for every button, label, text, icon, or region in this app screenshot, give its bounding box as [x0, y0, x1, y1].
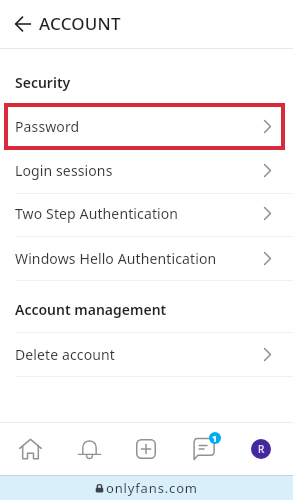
- staticText: Two Step Authentication: [15, 204, 264, 223]
- button[interactable]: Two Step Authentication: [0, 193, 293, 236]
- staticText: onlyfans.com: [106, 479, 198, 497]
- button[interactable]: Password: [0, 102, 293, 149]
- button[interactable]: Profile: [237, 423, 285, 475]
- button[interactable]: Messages: [183, 420, 231, 472]
- staticText: ACCOUNT: [39, 12, 121, 35]
- button[interactable]: New post: [122, 423, 170, 475]
- staticText: R: [258, 442, 265, 456]
- staticText: Delete account: [15, 345, 264, 364]
- staticText: Security: [15, 73, 71, 92]
- button[interactable]: Windows Hello Authentication: [0, 236, 293, 280]
- staticText: 1: [212, 432, 218, 444]
- staticText: Login sessions: [15, 161, 264, 180]
- button[interactable]: Home: [6, 423, 54, 475]
- staticText: Password: [15, 117, 264, 136]
- button[interactable]: Login sessions: [0, 149, 293, 193]
- button[interactable]: Back: [7, 0, 38, 48]
- button[interactable]: Delete account: [0, 332, 293, 376]
- staticText: Windows Hello Authentication: [15, 249, 264, 268]
- button[interactable]: Notifications: [65, 423, 113, 475]
- staticText: Account management: [15, 300, 167, 319]
